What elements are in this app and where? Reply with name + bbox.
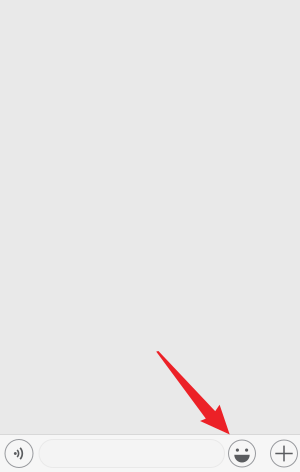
button[interactable]: Audio message <box>5 439 33 467</box>
button[interactable]: Stickers <box>228 440 255 467</box>
button[interactable]: Add attachment <box>270 440 297 467</box>
